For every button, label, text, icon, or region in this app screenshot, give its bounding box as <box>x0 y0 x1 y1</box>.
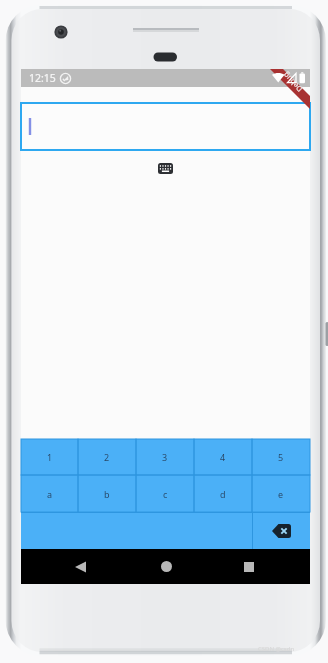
staticText: 12:15 <box>29 71 56 85</box>
staticText: c <box>163 488 168 500</box>
button[interactable]: 5 <box>252 439 310 475</box>
button[interactable]: d <box>194 475 252 512</box>
button[interactable]: Recents <box>227 549 271 584</box>
staticText: b <box>104 488 110 500</box>
button[interactable]: 1 <box>21 439 78 475</box>
button[interactable]: Back <box>58 549 102 584</box>
staticText: 5 <box>278 451 284 463</box>
button[interactable]: 3 <box>136 439 194 475</box>
button[interactable]: b <box>78 475 136 512</box>
button[interactable]: Backspace <box>252 512 310 549</box>
staticText: 1 <box>47 451 53 463</box>
button[interactable]: e <box>252 475 310 512</box>
staticText: 4 <box>220 451 226 463</box>
staticText: a <box>47 488 53 500</box>
staticText: Debug <box>280 70 304 94</box>
staticText: 2 <box>104 451 110 463</box>
staticText: d <box>220 488 226 500</box>
staticText: 3 <box>162 451 168 463</box>
button[interactable] <box>21 103 310 150</box>
staticText: e <box>278 488 284 500</box>
button[interactable]: 2 <box>78 439 136 475</box>
button[interactable]: a <box>21 475 78 512</box>
staticText: CSDN @csdn <box>258 645 295 653</box>
button[interactable]: Home <box>144 549 188 584</box>
button[interactable] <box>21 512 252 549</box>
button[interactable]: c <box>136 475 194 512</box>
button[interactable]: 4 <box>194 439 252 475</box>
